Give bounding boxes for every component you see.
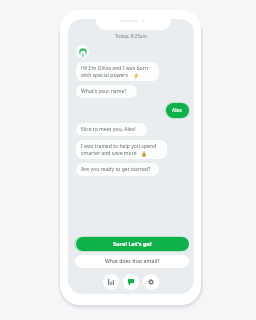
- staticText: What's your name?: [81, 88, 127, 95]
- button[interactable]: Nice to meet you, Alex!: [76, 123, 147, 136]
- staticText: What does that entail?: [105, 258, 160, 265]
- button[interactable]: Settings: [143, 274, 159, 290]
- staticText: smarter and save more: [81, 150, 137, 157]
- button[interactable]: Sure! Let's go!: [76, 237, 189, 251]
- button[interactable]: I was trained to help you spend: [76, 140, 167, 159]
- button[interactable]: Hi! I'm Olivia and I was born: [76, 62, 159, 81]
- button[interactable]: Alex: [166, 103, 189, 118]
- button[interactable]: Insights: [103, 274, 119, 290]
- staticText: Sure! Let's go!: [113, 240, 152, 248]
- staticText: Hi! I'm Olivia and I was born: [81, 65, 148, 72]
- staticText: Alex: [172, 107, 183, 114]
- staticText: Today, 8:25am: [68, 33, 194, 39]
- button[interactable]: What's your name?: [76, 85, 137, 98]
- button[interactable]: Are you ready to get started?: [76, 163, 159, 176]
- staticText: Are you ready to get started?: [81, 166, 151, 173]
- button[interactable]: What does that entail?: [75, 255, 189, 268]
- staticText: Nice to meet you, Alex!: [81, 126, 136, 133]
- button[interactable]: Chat: [123, 274, 139, 290]
- staticText: I was trained to help you spend: [81, 143, 157, 150]
- staticText: with special powers: [81, 72, 128, 79]
